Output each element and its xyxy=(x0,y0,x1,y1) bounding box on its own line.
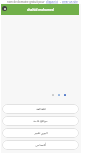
button[interactable]: chahid mohamed xyxy=(1,4,79,15)
button[interactable]: أقسامي xyxy=(2,140,79,150)
staticText: creer un site xyxy=(62,0,78,4)
button[interactable]: Share xyxy=(58,94,60,96)
staticText: اليوم تعبير xyxy=(34,131,48,135)
staticText: nom de domaine gratuit pour xyxy=(7,0,46,4)
button[interactable]: Share xyxy=(64,94,66,96)
staticText: أقسامي xyxy=(35,143,46,147)
staticText: cliquez ici xyxy=(46,0,59,4)
button[interactable]: مواقع هامة xyxy=(2,116,79,126)
button[interactable]: اليوم تعبير xyxy=(2,128,79,138)
button[interactable]: قصاصة xyxy=(2,104,79,114)
staticText: قصاصة xyxy=(36,107,46,111)
staticText: chahid mohamed xyxy=(27,8,54,12)
other: Logo xyxy=(2,6,7,11)
staticText: .. xyxy=(59,0,62,4)
staticText: مواقع هامة xyxy=(33,119,48,123)
